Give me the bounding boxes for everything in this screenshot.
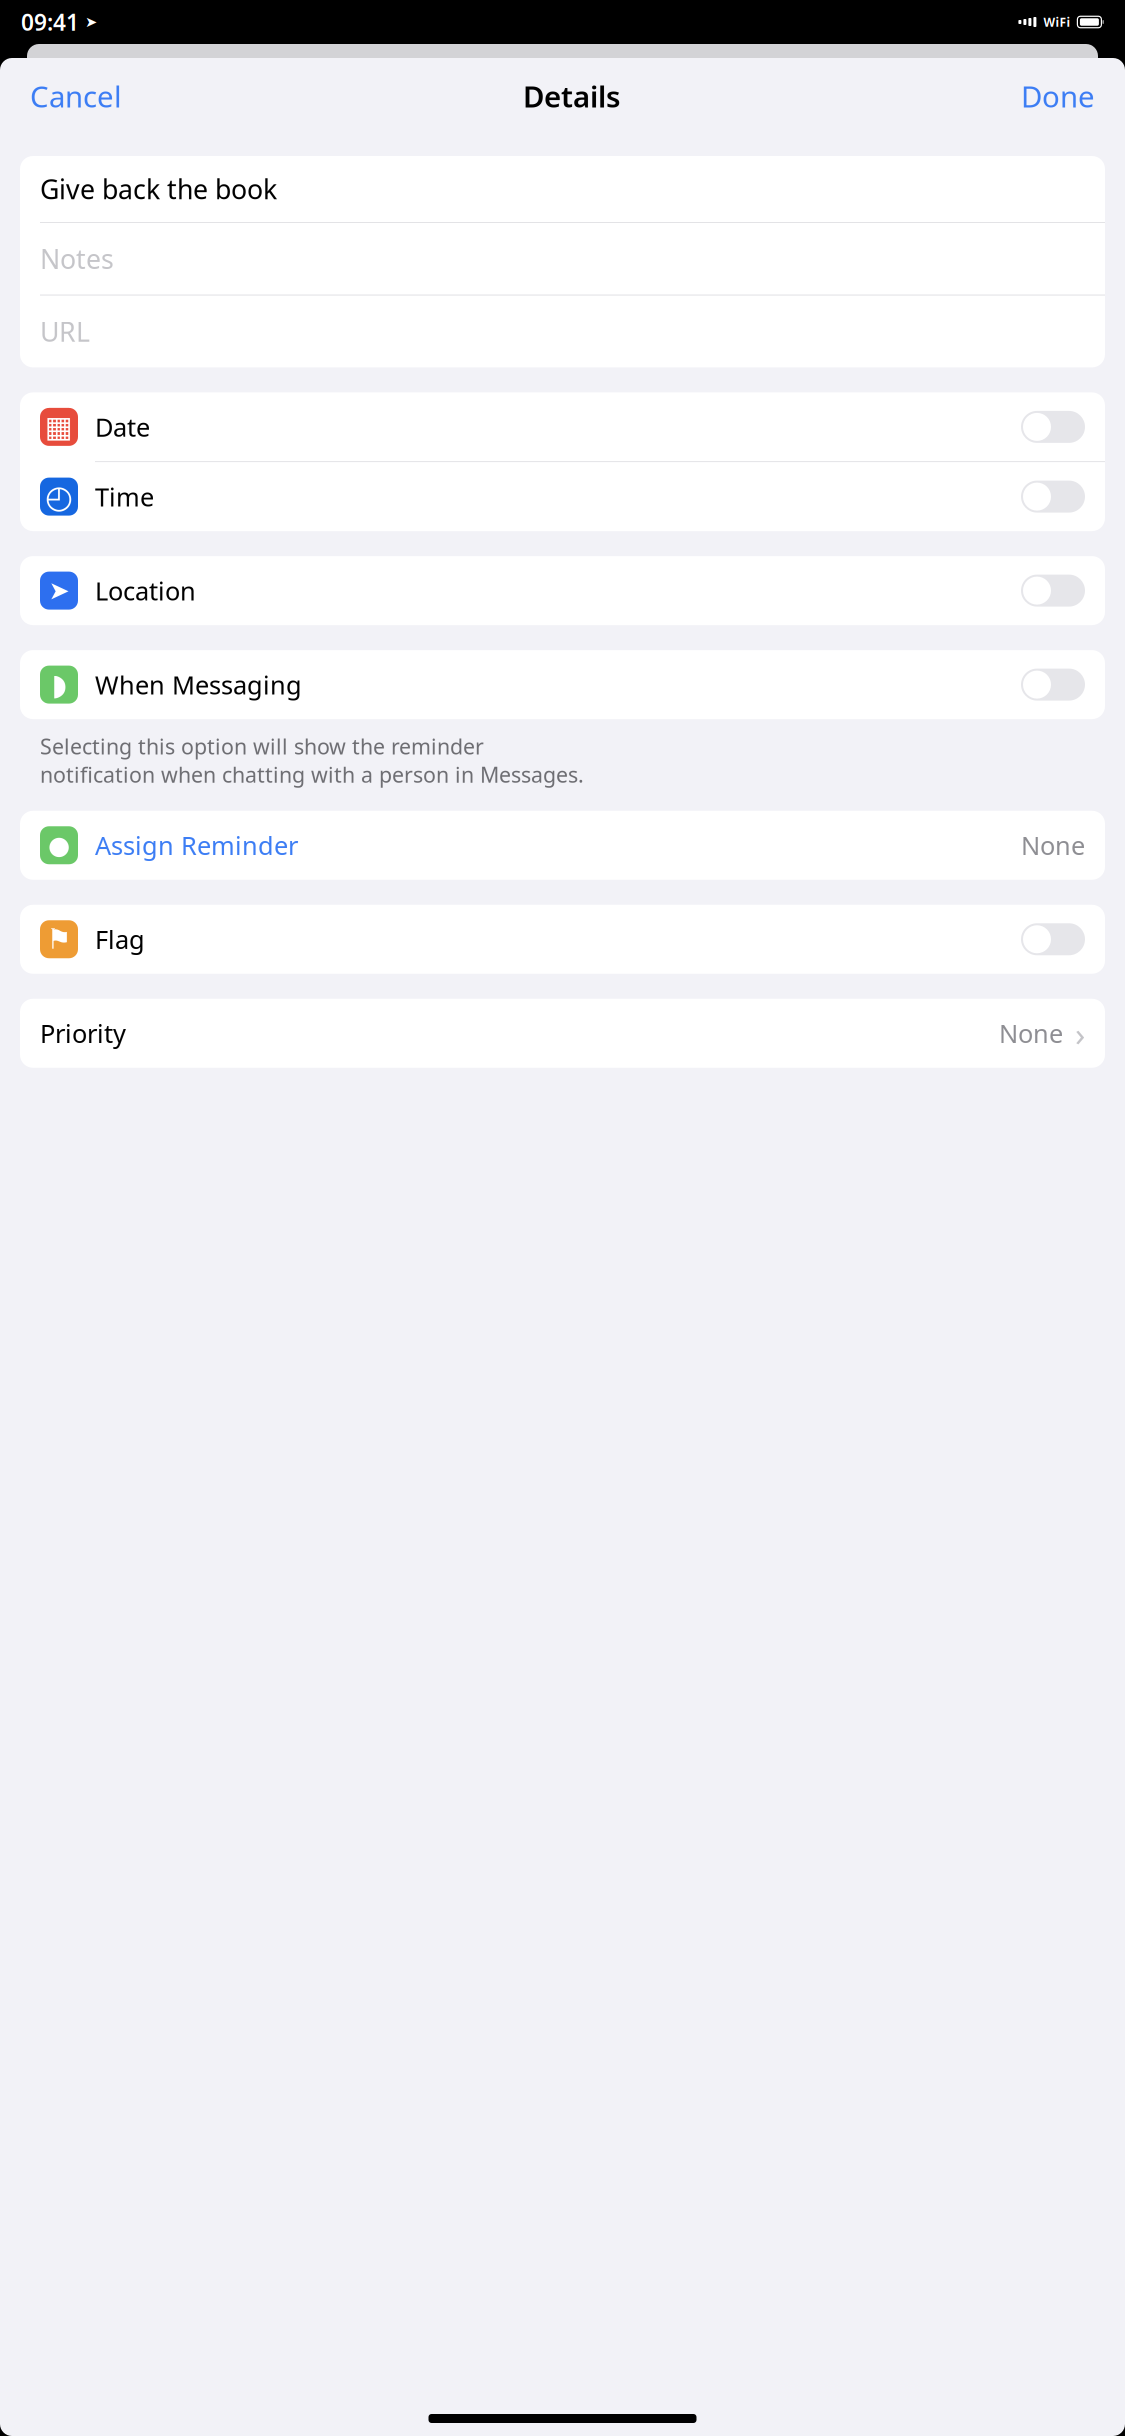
staticText: Done xyxy=(1021,76,1095,115)
button[interactable]: ● xyxy=(20,811,1105,880)
staticText: WiFi xyxy=(1043,14,1070,30)
staticText: › xyxy=(1075,1011,1085,1055)
button[interactable]: Give back the book xyxy=(20,156,1105,222)
button[interactable]: URL xyxy=(20,295,1105,367)
button[interactable]: Priority xyxy=(20,999,1105,1068)
staticText: ◗ xyxy=(51,668,66,701)
staticText: None xyxy=(1021,828,1085,862)
button[interactable]: Notes xyxy=(20,223,1105,295)
button[interactable]: ▦ xyxy=(20,392,1105,461)
staticText: Date xyxy=(95,410,150,444)
button[interactable]: Cancel xyxy=(26,68,126,123)
staticText: Details xyxy=(523,76,620,115)
staticText: Selecting this option will show the remi… xyxy=(40,732,584,789)
staticText: ● xyxy=(48,831,70,860)
button[interactable]: ➤ xyxy=(20,556,1105,625)
staticText: When Messaging xyxy=(95,668,302,701)
staticText: ◴ xyxy=(45,478,73,515)
staticText: Location xyxy=(95,574,196,607)
staticText: ➤ xyxy=(85,14,97,30)
button[interactable]: ◴ xyxy=(20,462,1105,531)
staticText: None xyxy=(999,1016,1063,1050)
staticText: URL xyxy=(40,314,90,349)
button[interactable]: ◗ xyxy=(20,650,1105,719)
button[interactable]: ⚑ xyxy=(20,905,1105,974)
staticText: Notes xyxy=(40,241,114,276)
staticText: 09:41 xyxy=(21,7,79,37)
button[interactable]: Done xyxy=(1017,68,1099,123)
staticText: Give back the book xyxy=(40,171,277,207)
staticText: Cancel xyxy=(30,76,122,115)
staticText: Time xyxy=(95,480,154,513)
staticText: Priority xyxy=(40,1016,126,1050)
staticText: ▦ xyxy=(45,410,73,444)
staticText: ⚑ xyxy=(46,923,71,955)
staticText: ➤ xyxy=(48,576,69,605)
staticText: Flag xyxy=(95,922,145,956)
staticText: Assign Reminder xyxy=(95,828,298,862)
